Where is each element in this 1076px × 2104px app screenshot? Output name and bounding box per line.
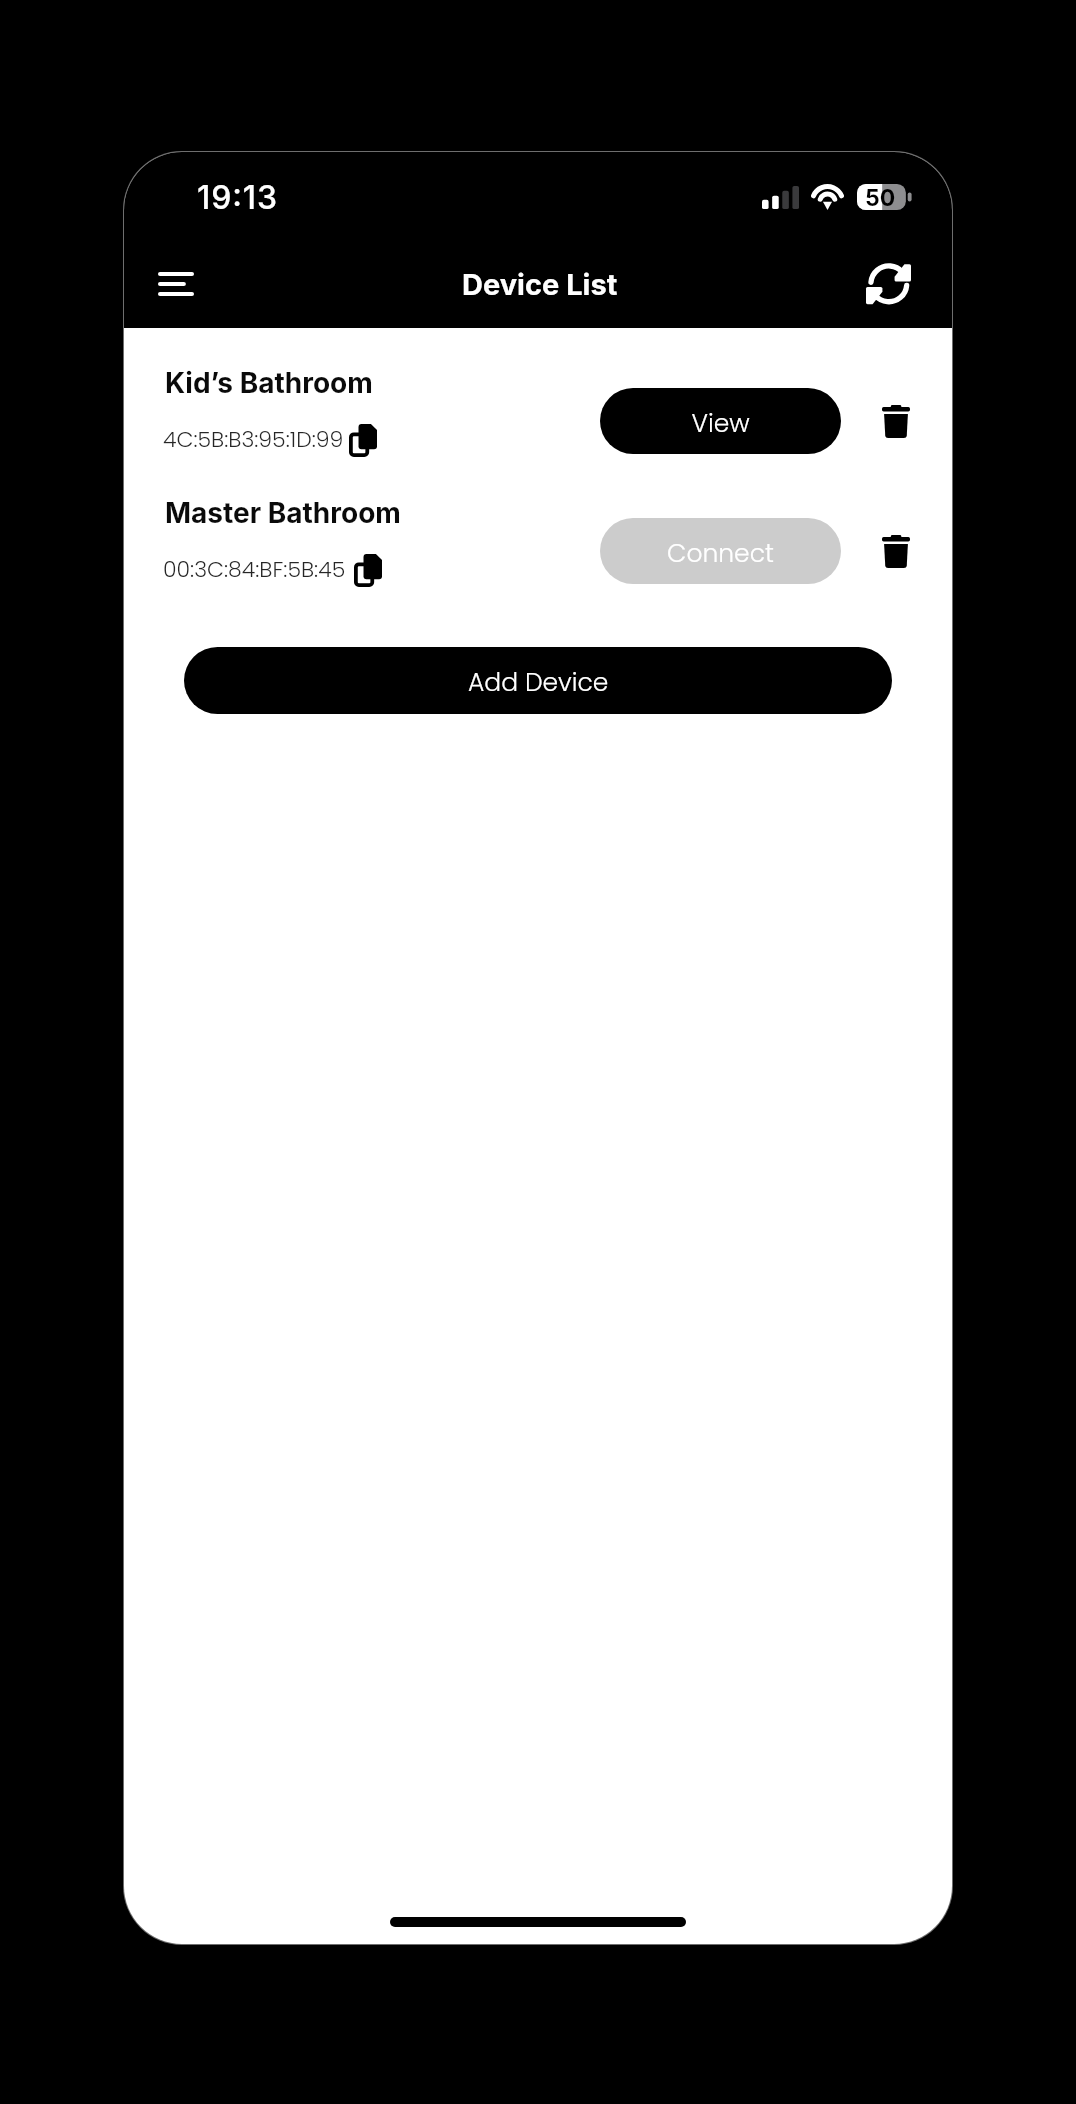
staticText: Master Bathroom <box>165 496 401 530</box>
button[interactable]: Delete device <box>879 515 913 587</box>
staticText: Device List <box>462 267 618 302</box>
button[interactable]: View <box>600 388 841 454</box>
staticText: 19:13 <box>197 178 278 217</box>
button[interactable]: Add Device <box>184 647 892 714</box>
staticText: 00:3C:84:BF:5B:45 <box>163 554 346 585</box>
button[interactable]: Copy MAC address <box>337 414 389 466</box>
staticText: 50 <box>865 184 896 210</box>
staticText: View <box>691 406 750 441</box>
staticText: 4C:5B:B3:95:1D:99 <box>163 424 344 455</box>
button[interactable]: Connect <box>600 518 841 584</box>
button[interactable]: Delete device <box>879 385 913 457</box>
staticText: Kid’s Bathroom <box>165 366 373 400</box>
button[interactable]: Open navigation menu <box>140 253 212 315</box>
staticText: Connect <box>667 536 774 571</box>
button[interactable]: Refresh device list <box>847 247 929 319</box>
button[interactable]: Copy MAC address <box>342 544 394 596</box>
staticText: Add Device <box>468 665 609 700</box>
